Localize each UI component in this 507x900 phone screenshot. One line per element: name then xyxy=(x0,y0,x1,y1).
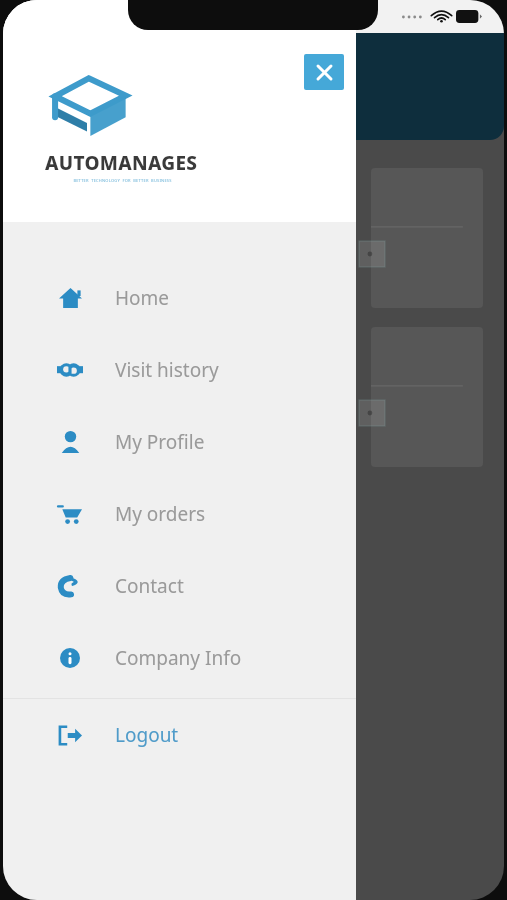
staticText: AUTOMANAGES xyxy=(45,150,198,176)
staticText: BETTER TECHNOLOGY FOR BETTER BUSINESS xyxy=(45,178,200,183)
staticText: Contact xyxy=(115,573,184,599)
button[interactable]: Logout xyxy=(3,699,356,771)
staticText: Logout xyxy=(115,722,179,748)
button[interactable]: Company Info xyxy=(3,622,356,694)
button[interactable]: Visit history xyxy=(3,334,356,406)
staticText: My orders xyxy=(115,501,206,527)
button[interactable]: My Profile xyxy=(3,406,356,478)
staticText: Visit history xyxy=(115,357,219,383)
button[interactable]: Home xyxy=(3,262,356,334)
button[interactable]: My orders xyxy=(3,478,356,550)
button[interactable]: Close menu xyxy=(304,54,344,90)
staticText: Company Info xyxy=(115,645,242,671)
staticText: Home xyxy=(115,285,170,311)
staticText: My Profile xyxy=(115,429,205,455)
button[interactable]: Contact xyxy=(3,550,356,622)
